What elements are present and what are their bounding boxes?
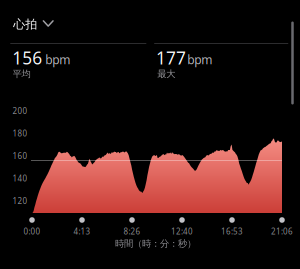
staticText: 180 bbox=[12, 128, 27, 139]
staticText: 8:26 bbox=[123, 226, 140, 237]
staticText: bpm bbox=[45, 51, 70, 67]
staticText: 時間（時：分：秒） bbox=[115, 238, 196, 249]
staticText: bpm bbox=[187, 51, 212, 67]
staticText: 21:06 bbox=[271, 226, 293, 237]
staticText: 心拍 bbox=[13, 17, 37, 31]
staticText: 12:40 bbox=[171, 226, 193, 237]
staticText: 160 bbox=[12, 151, 27, 161]
button[interactable] bbox=[9, 12, 57, 36]
staticText: 平均 bbox=[12, 68, 30, 80]
staticText: 200 bbox=[12, 106, 27, 116]
staticText: 16:53 bbox=[221, 226, 243, 237]
staticText: 0:00 bbox=[23, 226, 40, 237]
staticText: 156 bbox=[12, 46, 42, 69]
staticText: 140 bbox=[12, 173, 27, 184]
staticText: 120 bbox=[12, 196, 27, 206]
staticText: 最大 bbox=[157, 68, 175, 80]
staticText: 4:13 bbox=[73, 226, 90, 237]
staticText: 177 bbox=[156, 46, 186, 69]
